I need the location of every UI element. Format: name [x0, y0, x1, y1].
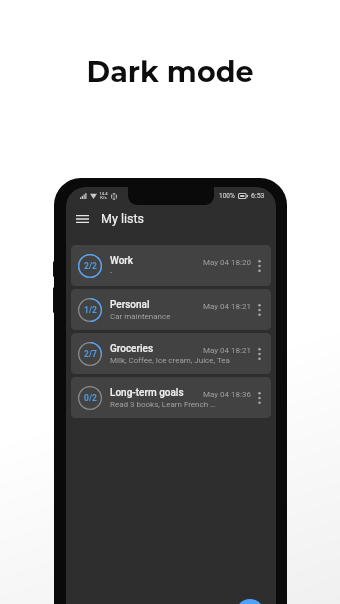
staticText: Milk, Coffee, Ice cream, Juice, Tea [110, 356, 230, 365]
staticText: 2/7 [84, 349, 97, 359]
staticText: 100% [219, 192, 235, 200]
staticText: My lists [101, 211, 144, 226]
staticText: - [110, 268, 113, 277]
button[interactable]: 2/7 [71, 333, 271, 374]
staticText: May 04 18:21 [203, 302, 251, 311]
staticText: Read 3 books, Learn French … [110, 400, 216, 409]
staticText: 0/2 [84, 393, 97, 403]
staticText: Work [110, 255, 134, 267]
staticText: 6:53 [251, 192, 265, 200]
button[interactable]: More options [251, 378, 271, 418]
button[interactable]: Open navigation drawer [70, 207, 94, 231]
staticText: Groceries [110, 343, 154, 355]
staticText: May 04 18:21 [203, 346, 251, 355]
staticText: 2/2 [84, 261, 97, 271]
button[interactable]: 2/2 [71, 245, 271, 286]
button[interactable]: More options [251, 290, 271, 330]
staticText: Dark mode [0, 54, 340, 89]
staticText: 1/2 [84, 305, 97, 315]
staticText: 14.4 K/s [99, 191, 108, 201]
staticText: May 04 18:36 [203, 390, 251, 399]
button[interactable]: 1/2 [71, 289, 271, 330]
button[interactable]: More options [251, 334, 271, 374]
staticText: Car maintenance [110, 312, 171, 321]
button[interactable]: 0/2 [71, 377, 271, 418]
staticText: Personal [110, 299, 150, 311]
button[interactable]: Add new list [236, 599, 264, 604]
button[interactable]: More options [251, 246, 271, 286]
staticText: Long-term goals [110, 387, 184, 399]
staticText: May 04 18:20 [203, 258, 251, 267]
